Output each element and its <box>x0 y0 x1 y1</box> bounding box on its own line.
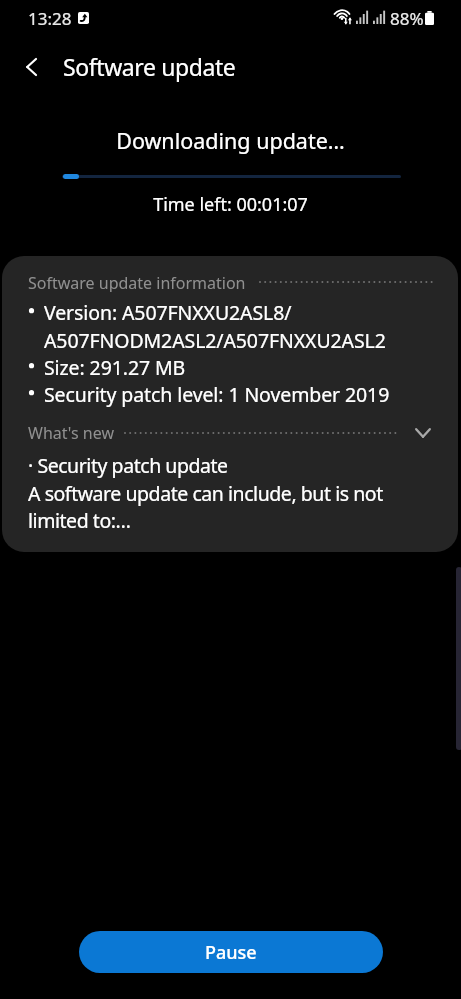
staticText: Pause <box>205 940 257 965</box>
staticText: Downloading update… <box>0 126 461 155</box>
staticText: Size: 291.27 MB <box>44 354 186 381</box>
staticText: Software update information <box>28 272 246 292</box>
button[interactable]: What's new <box>28 422 431 444</box>
staticText: 13:28 <box>28 7 72 30</box>
staticText: Security patch level: 1 November 2019 <box>44 381 390 408</box>
staticText: Software update <box>63 51 236 82</box>
staticText: Time left: 00:01:07 <box>0 192 461 217</box>
button[interactable]: Back <box>8 47 54 87</box>
staticText: · Security patch update A software updat… <box>28 452 383 533</box>
staticText: Version: A507FNXXU2ASL8/ A507FNODM2ASL2/… <box>44 299 386 353</box>
staticText: What's new <box>28 422 114 444</box>
staticText: 88% <box>390 7 424 30</box>
button[interactable]: Pause <box>79 931 383 973</box>
